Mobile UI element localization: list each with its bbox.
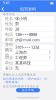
button[interactable]: 邮箱	[2, 37, 54, 42]
staticText: 请确认以上信息准确无误	[3, 73, 36, 76]
staticText: 提交申请	[22, 89, 34, 92]
button[interactable]: 职业	[2, 55, 54, 60]
button[interactable]: 提交申请	[16, 88, 40, 92]
staticText: 备注	[5, 66, 13, 70]
button[interactable]: 备注	[2, 66, 54, 71]
staticText: 基本信息	[3, 13, 15, 16]
staticText: 所在地	[5, 47, 13, 57]
staticText: 工程师	[15, 55, 27, 60]
staticText: 邮箱	[5, 37, 13, 42]
staticText: 姓名	[5, 16, 13, 21]
staticText: 填写资料	[20, 7, 36, 12]
staticText: 提交后资料将用于实名认证	[3, 85, 39, 88]
staticText: 单位	[5, 60, 13, 65]
staticText: 电话	[5, 32, 13, 37]
staticText: 男	[15, 21, 19, 26]
staticText: 138••••8888	[15, 32, 37, 37]
staticText: 我已阅读并同意 《用户协议》 与 《隐私政策》	[3, 77, 47, 84]
button[interactable]: 姓名	[2, 16, 54, 21]
button[interactable]: 单位	[2, 60, 54, 65]
staticText: 职业	[5, 55, 13, 60]
staticText: 年龄	[5, 27, 13, 32]
staticText: 身份证	[5, 42, 13, 52]
button[interactable]: 年龄	[2, 27, 54, 32]
button[interactable]: 性别	[2, 21, 54, 26]
button[interactable]: 所在地	[2, 50, 54, 55]
button[interactable]: Back	[0, 6, 6, 12]
staticText: 9:41	[3, 1, 10, 5]
staticText: 张小明	[15, 16, 27, 21]
staticText: zh@mail.com	[15, 37, 40, 42]
staticText: 无	[15, 66, 19, 70]
staticText: 性别	[5, 21, 13, 26]
button[interactable]: 身份证	[2, 45, 54, 50]
staticText: 上海市	[15, 50, 27, 55]
staticText: 28	[15, 26, 19, 32]
staticText: ▮▮▮	[50, 2, 53, 5]
staticText: 3101••••1234	[15, 44, 39, 50]
staticText: 某某科技	[15, 60, 31, 65]
button[interactable]: 电话	[2, 32, 54, 37]
